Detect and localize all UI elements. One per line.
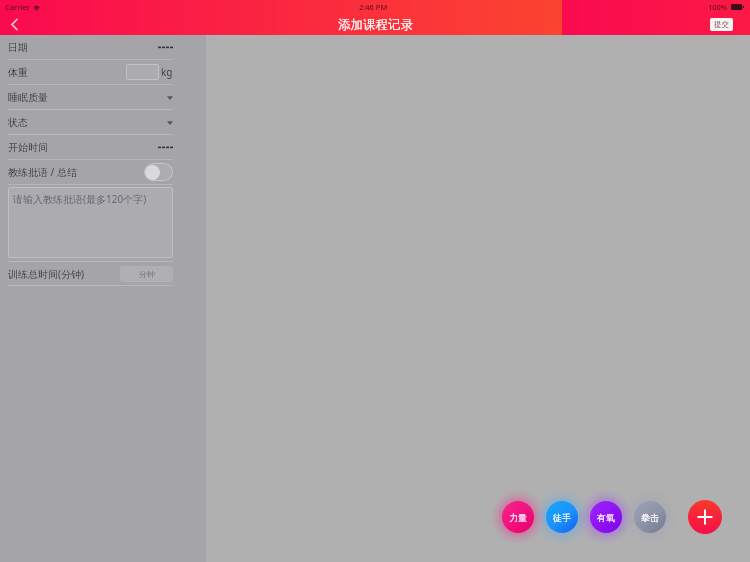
button[interactable]: 状态	[0, 110, 173, 134]
button[interactable]: 开始时间	[0, 135, 173, 159]
staticText: 添加课程记录	[338, 17, 413, 33]
button[interactable]: 力量	[502, 501, 534, 533]
staticText: 日期	[8, 41, 28, 54]
button[interactable]: 教练批语 / 总结	[0, 160, 173, 184]
staticText: 拳击	[641, 512, 659, 523]
staticText: 教练批语 / 总结	[8, 165, 77, 179]
button[interactable]: 睡眠质量	[0, 85, 173, 109]
button[interactable]: Back	[0, 14, 28, 35]
staticText: 100%	[708, 2, 728, 12]
staticText: 有氧	[597, 512, 615, 523]
staticText: kg	[161, 65, 173, 79]
staticText: 训练总时间(分钟)	[8, 267, 84, 281]
staticText: 睡眠质量	[8, 91, 48, 104]
staticText: Carrier	[5, 2, 30, 12]
button[interactable]: 日期	[0, 35, 173, 59]
staticText: 请输入教练批语(最多120个字)	[13, 192, 147, 206]
staticText: 体重	[8, 66, 28, 79]
staticText: 2:46 PM	[359, 2, 388, 12]
button[interactable]: 体重	[0, 60, 173, 84]
button[interactable]: 提交	[710, 18, 733, 31]
button[interactable]: Add	[688, 500, 722, 534]
staticText: 提交	[714, 20, 729, 29]
button[interactable]: 有氧	[590, 501, 622, 533]
button[interactable]: 拳击	[634, 501, 666, 533]
staticText: 状态	[8, 116, 28, 129]
button[interactable]: Weight	[126, 64, 159, 80]
button[interactable]: 分钟	[120, 266, 173, 282]
staticText: 分钟	[139, 269, 155, 279]
staticText: 开始时间	[8, 141, 48, 154]
button[interactable]: 徒手	[546, 501, 578, 533]
staticText: 徒手	[553, 512, 571, 523]
staticText: 力量	[509, 512, 527, 523]
button[interactable]: 请输入教练批语(最多120个字)	[8, 187, 173, 258]
button[interactable]: 训练总时间(分钟)	[0, 262, 173, 285]
button[interactable]: Toggle summary	[144, 163, 173, 181]
